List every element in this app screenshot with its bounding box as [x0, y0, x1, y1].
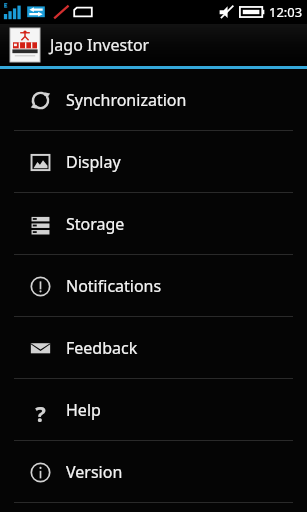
staticText: Notifications	[66, 275, 162, 297]
button[interactable]: Display	[0, 131, 307, 192]
button[interactable]: Version	[0, 441, 307, 502]
staticText: Display	[66, 151, 121, 173]
staticText: Jago Investor	[50, 34, 150, 56]
button[interactable]: ?	[0, 379, 307, 440]
staticText: Version	[66, 461, 123, 483]
button[interactable]: Synchronization	[0, 69, 307, 130]
staticText: 12:03	[269, 3, 303, 21]
staticText: Storage	[66, 213, 125, 235]
button[interactable]: Jago Investor	[0, 24, 307, 66]
button[interactable]: Notifications	[0, 255, 307, 316]
button[interactable]: Feedback	[0, 317, 307, 378]
staticText: Synchronization	[66, 89, 187, 111]
button[interactable]: Storage	[0, 193, 307, 254]
staticText: Help	[66, 399, 101, 421]
staticText: Feedback	[66, 337, 138, 359]
staticText: ?	[35, 398, 46, 422]
